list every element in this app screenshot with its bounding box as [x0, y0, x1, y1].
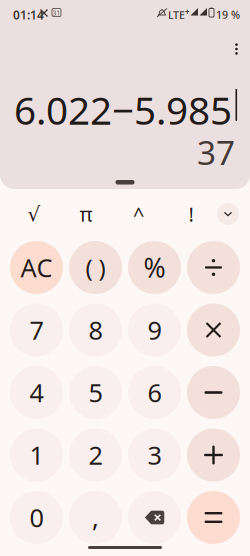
staticText: 19 % [216, 7, 240, 22]
staticText: 0 [29, 501, 43, 534]
staticText: 5 [88, 376, 102, 409]
button[interactable]: , [69, 491, 122, 544]
button[interactable]: ! [176, 199, 206, 229]
button[interactable]: AC [10, 241, 63, 294]
button[interactable]: 7 [10, 303, 63, 356]
button[interactable]: ( ) [69, 241, 122, 294]
staticText: 37 [197, 130, 235, 174]
button[interactable]: Show more functions [217, 203, 239, 225]
staticText: , [92, 501, 99, 534]
staticText: % [143, 250, 165, 285]
staticText: 01:14 [13, 7, 44, 23]
staticText: 4 [29, 376, 43, 409]
staticText: ( ) [85, 252, 105, 283]
staticText: AC [20, 251, 52, 284]
staticText: 31 [52, 9, 60, 17]
button[interactable]: % [128, 241, 181, 294]
button[interactable]: Equals [187, 491, 240, 544]
button[interactable]: 8 [69, 303, 122, 356]
staticText: LTE [168, 8, 185, 22]
staticText: 1 [29, 438, 43, 472]
button[interactable]: 2 [69, 428, 122, 481]
button[interactable]: 4 [10, 366, 63, 419]
staticText: π [79, 201, 92, 227]
button[interactable]: 9 [128, 303, 181, 356]
button[interactable]: √ [19, 199, 49, 229]
staticText: 7 [29, 313, 43, 347]
staticText: + [185, 6, 190, 17]
button[interactable]: More options [223, 36, 249, 62]
button[interactable]: Delete [128, 491, 181, 544]
staticText: 8 [88, 313, 102, 347]
staticText: 3 [147, 438, 161, 472]
button[interactable]: Add [187, 428, 240, 481]
staticText: 6.022−5.985 [14, 84, 232, 135]
button[interactable]: π [71, 199, 101, 229]
staticText: ^ [133, 201, 144, 227]
staticText: 9 [147, 313, 161, 347]
button[interactable]: ^ [123, 199, 153, 229]
button[interactable]: Subtract [187, 366, 240, 419]
staticText: ! [188, 201, 193, 227]
button[interactable]: Multiply [187, 303, 240, 356]
staticText: 6 [147, 376, 161, 409]
button[interactable]: 3 [128, 428, 181, 481]
button[interactable]: 0 [10, 491, 63, 544]
button[interactable]: Divide [187, 241, 240, 294]
button[interactable]: 6 [128, 366, 181, 419]
button[interactable]: 1 [10, 428, 63, 481]
staticText: 2 [88, 438, 102, 472]
button[interactable]: 5 [69, 366, 122, 419]
staticText: √ [27, 203, 40, 225]
